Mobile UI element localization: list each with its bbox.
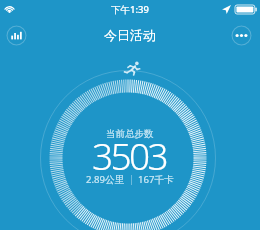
- staticText: 3503: [92, 130, 167, 180]
- staticText: 当前总步数: [106, 128, 154, 140]
- staticText: 下午1:39: [111, 3, 149, 16]
- button[interactable]: Statistics: [6, 25, 27, 46]
- staticText: 167千卡: [138, 173, 174, 186]
- button[interactable]: More options: [231, 25, 252, 46]
- staticText: 今日活动: [104, 27, 156, 43]
- staticText: 2.89公里: [86, 173, 125, 186]
